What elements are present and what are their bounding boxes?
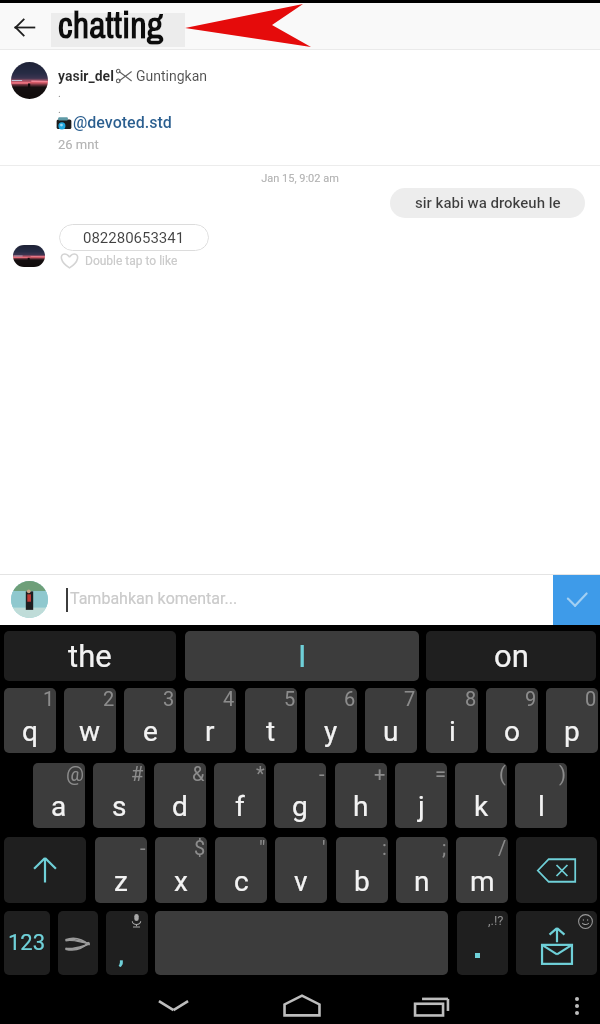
staticText: * (256, 763, 265, 785)
button[interactable]: Home (261, 985, 342, 1024)
button[interactable]: ; (396, 837, 448, 903)
staticText: s (112, 790, 127, 823)
button[interactable]: More options (552, 985, 600, 1024)
button[interactable]: 082280653341 (59, 224, 209, 251)
staticText: Tambahkan komentar... (70, 589, 238, 608)
staticText: j (418, 790, 425, 823)
staticText: ; (442, 837, 447, 859)
staticText: 4 (223, 688, 235, 710)
staticText: l (538, 790, 545, 823)
button[interactable]: 6 (305, 688, 357, 753)
button[interactable]: 123 (4, 911, 50, 975)
staticText: ' (322, 837, 326, 859)
button[interactable]: Hide keyboard (133, 985, 214, 1024)
button[interactable]: * (214, 763, 266, 828)
staticText: i (449, 715, 456, 748)
button[interactable]: yasir_del (0, 50, 600, 162)
staticText: 0 (585, 688, 597, 710)
button[interactable]: - (95, 837, 147, 903)
staticText: w (79, 715, 101, 748)
button[interactable]: the (4, 631, 176, 681)
staticText: d (172, 790, 188, 823)
staticText: 5 (284, 688, 296, 710)
staticText: Double tap to like (85, 254, 178, 268)
button[interactable]: " (215, 837, 267, 903)
button[interactable]: Switch keyboard (58, 911, 98, 975)
button[interactable]: & (154, 763, 206, 828)
staticText: 082280653341 (83, 229, 185, 247)
staticText: on (494, 638, 529, 674)
staticText: @ (66, 763, 84, 785)
button[interactable]: Send message (516, 911, 597, 975)
staticText: 7 (404, 688, 416, 710)
staticText: sir kabi wa drokeuh le (415, 194, 561, 212)
button[interactable]: : (336, 837, 388, 903)
button[interactable]: ,.!? (457, 911, 508, 975)
button[interactable]: Double tap to like (59, 252, 178, 269)
button[interactable]: 7 (365, 688, 417, 753)
button[interactable]: sir kabi wa drokeuh le (390, 188, 585, 218)
button[interactable]: 8 (426, 688, 478, 753)
staticText: Guntingkan (136, 68, 208, 84)
staticText: , (119, 943, 124, 969)
button[interactable]: ) (515, 763, 567, 828)
staticText: 3 (163, 688, 175, 710)
staticText: f (235, 790, 245, 823)
staticText: o (504, 715, 520, 748)
staticText: a (51, 790, 67, 823)
button[interactable]: 5 (245, 688, 297, 753)
staticText: - (140, 837, 146, 859)
staticText: Jan 15, 9:02 am (0, 172, 600, 185)
button[interactable]: Shift (4, 837, 86, 903)
button[interactable]: 1 (4, 688, 56, 753)
button[interactable]: 9 (486, 688, 538, 753)
staticText: 123 (8, 930, 46, 956)
button[interactable]: / (456, 837, 508, 903)
staticText: / (498, 837, 507, 859)
staticText: ) (559, 763, 566, 785)
staticText: c (234, 865, 249, 898)
button[interactable]: 2 (64, 688, 116, 753)
button[interactable]: I (185, 631, 419, 681)
staticText: t (266, 715, 276, 748)
button[interactable]: Backspace (516, 837, 597, 903)
button[interactable] (51, 13, 185, 47)
staticText: 26 mnt (58, 137, 99, 152)
button[interactable]: - (274, 763, 326, 828)
staticText: $ (194, 837, 206, 859)
button[interactable]: 3 (124, 688, 176, 753)
button[interactable]: Comma and voice input (106, 911, 148, 975)
staticText: - (319, 763, 325, 785)
staticText: the (68, 638, 112, 674)
button[interactable]: 0 (546, 688, 598, 753)
button[interactable]: @ (33, 763, 85, 828)
staticText: n (414, 865, 430, 898)
staticText: yasir_del (58, 68, 114, 84)
button[interactable]: Back (2, 5, 46, 49)
staticText: r (205, 715, 215, 748)
staticText: # (131, 763, 144, 785)
staticText: k (474, 790, 489, 823)
button[interactable]: 4 (184, 688, 236, 753)
staticText: & (192, 763, 205, 785)
staticText: . (58, 87, 61, 100)
staticText: = (435, 763, 446, 785)
staticText: m (470, 865, 495, 898)
button[interactable]: = (395, 763, 447, 828)
button[interactable]: on (426, 631, 596, 681)
button[interactable]: Recent apps (391, 985, 472, 1024)
staticText: 8 (465, 688, 477, 710)
button[interactable]: $ (155, 837, 207, 903)
button[interactable]: + (335, 763, 387, 828)
button[interactable]: ( (455, 763, 507, 828)
staticText: e (143, 715, 158, 748)
staticText: ( (499, 763, 506, 785)
staticText: chatting (58, 1, 164, 48)
staticText: 1 (43, 688, 55, 710)
button[interactable]: Send (553, 575, 600, 625)
button[interactable]: # (93, 763, 145, 828)
staticText: h (353, 790, 369, 823)
staticText: y (324, 715, 338, 748)
button[interactable]: ' (275, 837, 327, 903)
